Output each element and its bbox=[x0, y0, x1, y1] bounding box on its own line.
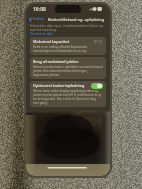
staticText: Udnyt dine data og se, hvordan batteriet… bbox=[30, 24, 106, 32]
staticText: Indst. bbox=[33, 16, 45, 22]
staticText: Dette er en måling af batterikapaciteten… bbox=[33, 45, 103, 53]
other: Status bbox=[89, 6, 102, 12]
button[interactable]: Optimeret batteriopladning, til bbox=[91, 83, 103, 89]
staticText: 10:08 bbox=[33, 6, 46, 13]
button[interactable]: Få mere at vide... bbox=[30, 32, 55, 36]
staticText: 87 % bbox=[94, 39, 103, 44]
staticText: Maksimal kapacitet bbox=[33, 39, 70, 44]
staticText: Batteriet understøtter i øjeblikket norm… bbox=[33, 65, 103, 77]
button[interactable]: Brug af maksimal ydelse bbox=[30, 57, 106, 79]
staticText: Brug af maksimal ydelse bbox=[33, 59, 79, 64]
button[interactable]: Indst. bbox=[28, 16, 46, 22]
button[interactable]: Optimeret batteriopladning bbox=[30, 81, 106, 107]
staticText: Batteritilstand og -opladning bbox=[48, 17, 105, 22]
staticText: iPhone lærer af din daglige opladningsru… bbox=[33, 89, 103, 105]
button[interactable]: Maksimal kapacitet bbox=[30, 37, 106, 55]
staticText: Optimeret batteriopladning bbox=[33, 83, 85, 88]
